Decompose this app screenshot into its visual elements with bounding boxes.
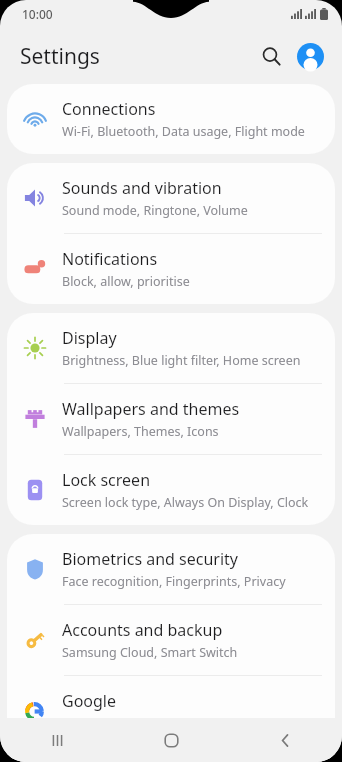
staticText: Google	[62, 690, 117, 712]
staticText: Sound mode, Ringtone, Volume	[62, 202, 248, 219]
button[interactable]: Google	[7, 676, 335, 746]
staticText: Wallpapers, Themes, Icons	[62, 423, 219, 440]
staticText: Block, allow, prioritise	[62, 273, 190, 290]
staticText: 10:00	[22, 6, 53, 22]
button[interactable]: Biometrics and security	[7, 534, 335, 604]
staticText: Samsung Cloud, Smart Switch	[62, 644, 238, 661]
staticText: Sounds and vibration	[62, 177, 222, 199]
staticText: Connections	[62, 98, 156, 120]
button[interactable]: Lock screen	[7, 455, 335, 525]
button[interactable]: Display	[7, 313, 335, 383]
staticText: Brightness, Blue light filter, Home scre…	[62, 352, 301, 369]
button[interactable]: Wallpapers and themes	[7, 384, 335, 454]
button[interactable]: Recent apps	[0, 718, 114, 762]
button[interactable]: Home	[114, 718, 228, 762]
staticText: Biometrics and security	[62, 548, 239, 570]
button[interactable]: Advanced features	[7, 755, 335, 762]
button[interactable]: Sounds and vibration	[7, 163, 335, 233]
staticText: Wi-Fi, Bluetooth, Data usage, Flight mod…	[62, 123, 305, 140]
staticText: Accounts and backup	[62, 619, 223, 641]
button[interactable]: Back	[228, 718, 342, 762]
button[interactable]: Accounts and backup	[7, 605, 335, 675]
staticText: Screen lock type, Always On Display, Clo…	[62, 494, 323, 511]
staticText: Notifications	[62, 248, 158, 270]
button[interactable]: Notifications	[7, 234, 335, 304]
staticText: Face recognition, Fingerprints, Privacy	[62, 573, 286, 590]
staticText: Lock screen	[62, 469, 151, 491]
button[interactable]: Account	[291, 37, 329, 75]
staticText: Google settings	[62, 715, 155, 732]
staticText: Wallpapers and themes	[62, 398, 240, 420]
staticText: Display	[62, 327, 117, 349]
staticText: Settings	[20, 42, 100, 71]
button[interactable]: Search	[252, 37, 290, 75]
button[interactable]: Connections	[7, 84, 335, 154]
